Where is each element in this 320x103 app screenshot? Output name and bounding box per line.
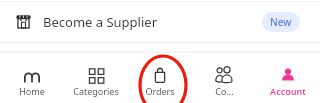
button[interactable]: New [262,12,300,32]
button[interactable]: Orders [128,53,192,103]
staticText: New [270,15,292,29]
staticText: Become a Supplier [43,13,157,31]
staticText: Orders [145,85,175,97]
button[interactable]: Become a Supplier [0,0,320,43]
button[interactable]: Co... [192,53,256,103]
staticText: Co... [215,85,234,97]
staticText: Account [270,85,306,97]
button[interactable]: Categories [64,53,128,103]
staticText: Categories [73,85,119,97]
button[interactable]: Home [0,53,64,103]
staticText: Home [19,85,45,97]
button[interactable]: Account [256,53,320,103]
